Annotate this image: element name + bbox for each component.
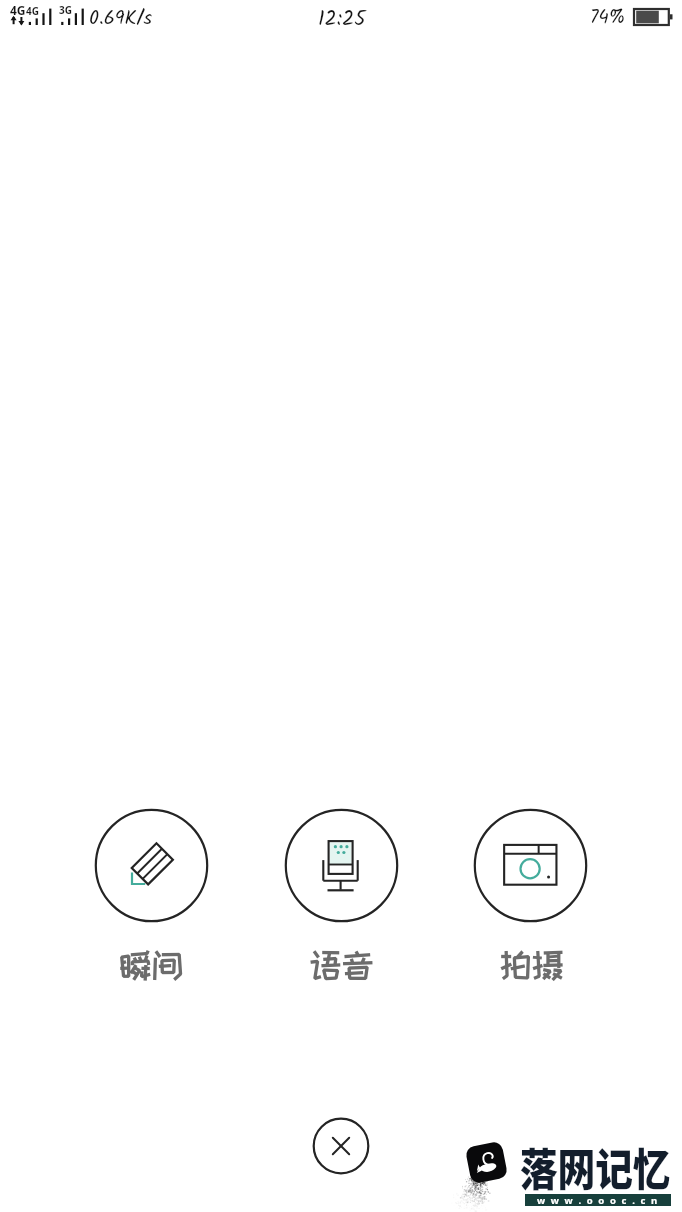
staticText: 0.69K/s: [89, 3, 153, 35]
button[interactable]: Camera: [468, 799, 592, 988]
staticText: 语音: [309, 947, 374, 982]
staticText: 12:25: [318, 3, 366, 36]
staticText: w w w . o o o c . c n: [537, 1194, 659, 1206]
staticText: 4G: [26, 4, 39, 18]
staticText: 瞬间: [119, 947, 184, 982]
staticText: 落网记忆: [520, 1134, 671, 1199]
button[interactable]: Moment: [89, 799, 213, 988]
staticText: 74%: [590, 3, 626, 32]
staticText: 3G: [59, 3, 72, 17]
staticText: 拍摄: [499, 947, 564, 982]
button[interactable]: Close: [311, 1116, 371, 1176]
staticText: 4G: [10, 2, 26, 18]
button[interactable]: Voice: [279, 799, 403, 988]
